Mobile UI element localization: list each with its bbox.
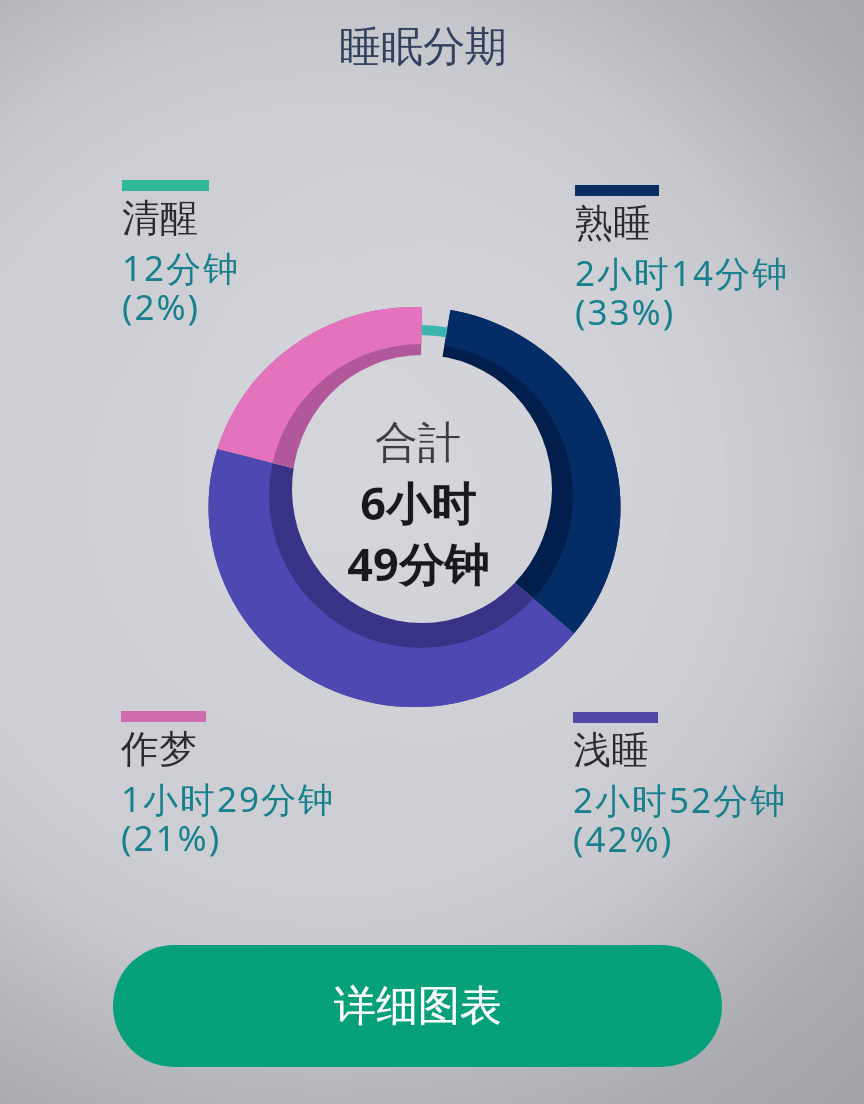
staticText: 作梦 <box>121 725 197 773</box>
staticText: 浅睡 <box>573 726 649 774</box>
staticText: 6小时 <box>360 472 476 533</box>
button[interactable]: 熟睡 <box>575 185 835 335</box>
button[interactable]: 作梦 <box>121 711 381 861</box>
button[interactable]: Sleep stages chart <box>209 305 621 709</box>
staticText: 49分钟 <box>347 533 489 594</box>
staticText: 2小时14分钟 (33%) <box>575 249 790 335</box>
staticText: 睡眠分期 <box>339 21 507 74</box>
staticText: 合計 <box>375 416 461 470</box>
button[interactable]: 浅睡 <box>573 712 833 862</box>
staticText: 清醒 <box>122 194 198 242</box>
staticText: 熟睡 <box>575 199 651 247</box>
staticText: 1小时29分钟 (21%) <box>121 775 336 861</box>
staticText: 详细图表 <box>334 980 502 1033</box>
button[interactable]: 详细图表 <box>113 945 722 1067</box>
staticText: 12分钟 (2%) <box>122 244 241 330</box>
button[interactable]: 清醒 <box>122 180 382 330</box>
staticText: 2小时52分钟 (42%) <box>573 776 788 862</box>
